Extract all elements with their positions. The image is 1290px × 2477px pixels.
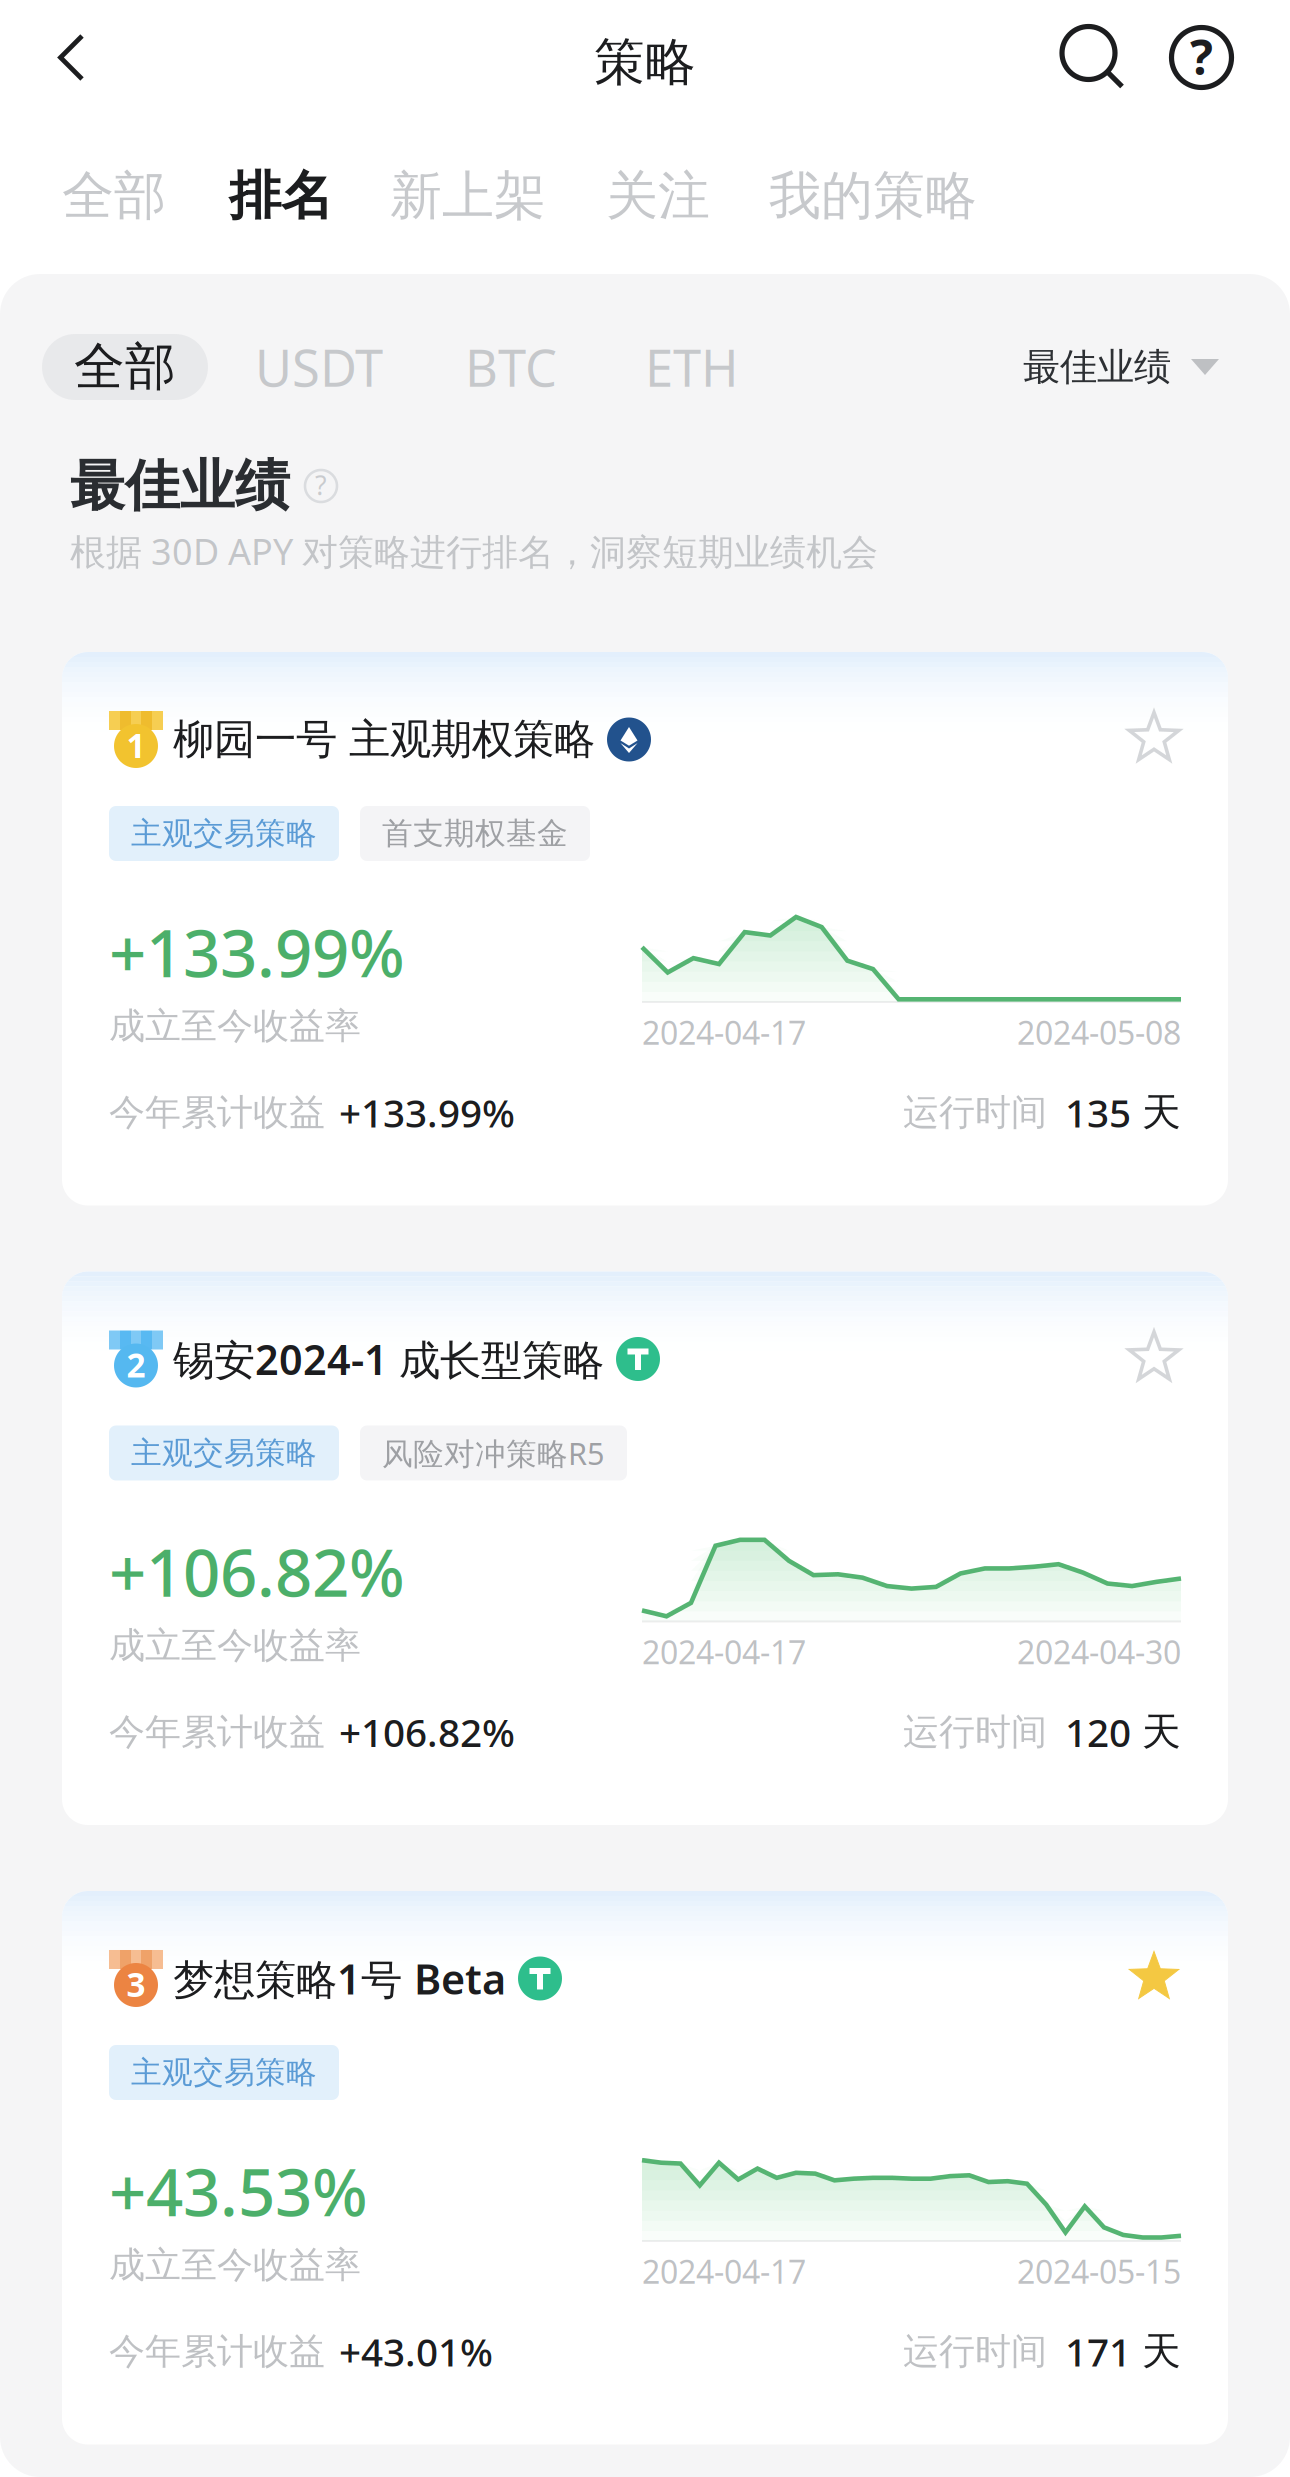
staticText: 全部 bbox=[74, 336, 176, 398]
staticText: 风险对冲策略R5 bbox=[382, 1433, 605, 1473]
staticText: 成立至今收益率 bbox=[109, 1004, 361, 1048]
staticText: 3 bbox=[126, 1962, 145, 2006]
button[interactable]: 全部 bbox=[62, 157, 166, 235]
staticText: 2024-04-30 bbox=[1017, 1630, 1181, 1673]
button[interactable]: 全部 bbox=[42, 334, 208, 400]
staticText: 2024-04-17 bbox=[642, 1011, 806, 1053]
staticText: 锡安2024-1 成长型策略 bbox=[173, 1332, 604, 1386]
staticText: 成立至今收益率 bbox=[109, 2243, 361, 2287]
staticText: +106.82% bbox=[339, 1706, 515, 1758]
button[interactable]: USDT bbox=[208, 334, 430, 400]
staticText: 关注 bbox=[606, 164, 710, 228]
staticText: 策略 bbox=[594, 31, 696, 94]
staticText: 2024-05-15 bbox=[1017, 2250, 1181, 2292]
staticText: 最佳业绩 bbox=[1023, 344, 1171, 390]
staticText: 柳园一号 主观期权策略 bbox=[173, 714, 595, 765]
staticText: USDT bbox=[255, 333, 383, 401]
button[interactable]: Help bbox=[1171, 9, 1232, 105]
staticText: 主观交易策略 bbox=[131, 1434, 317, 1472]
button[interactable]: Remove from favourites bbox=[1127, 1951, 1181, 2005]
staticText: +106.82% bbox=[109, 1528, 405, 1615]
staticText: 首支期权基金 bbox=[382, 815, 568, 852]
staticText: 今年累计收益 bbox=[109, 1710, 325, 1754]
staticText: ? bbox=[1190, 25, 1213, 88]
staticText: 今年累计收益 bbox=[109, 2329, 325, 2374]
staticText: 120 bbox=[1065, 1706, 1131, 1758]
staticText: 新上架 bbox=[390, 164, 546, 228]
staticText: 2024-05-08 bbox=[1017, 1011, 1181, 1053]
staticText: 运行时间 bbox=[903, 1710, 1047, 1754]
staticText: 天 bbox=[1142, 1708, 1181, 1756]
button[interactable]: Back bbox=[0, 9, 142, 105]
staticText: 排名 bbox=[229, 164, 333, 228]
button[interactable]: 最佳业绩 bbox=[1023, 334, 1219, 400]
button[interactable]: Add to favourites bbox=[1127, 1332, 1181, 1386]
staticText: 171 bbox=[1065, 2326, 1131, 2377]
staticText: 梦想策略1号 Beta bbox=[173, 1951, 506, 2006]
staticText: 主观交易策略 bbox=[131, 815, 317, 852]
button[interactable]: Search bbox=[1062, 9, 1124, 105]
staticText: 成立至今收益率 bbox=[109, 1623, 361, 1668]
staticText: +43.53% bbox=[109, 2148, 368, 2234]
staticText: 135 bbox=[1065, 1087, 1131, 1138]
staticText: 2 bbox=[126, 1342, 145, 1387]
button[interactable]: 关注 bbox=[606, 157, 710, 235]
staticText: 天 bbox=[1142, 2328, 1181, 2375]
button[interactable]: 我的策略 bbox=[769, 157, 977, 235]
staticText: BTC bbox=[465, 333, 557, 401]
staticText: +133.99% bbox=[339, 1087, 515, 1138]
staticText: 2024-04-17 bbox=[642, 2250, 806, 2292]
staticText: +133.99% bbox=[109, 909, 405, 995]
staticText: 1 bbox=[126, 723, 145, 767]
button[interactable]: 排名 bbox=[229, 157, 333, 235]
staticText: 天 bbox=[1142, 1089, 1181, 1136]
staticText: 运行时间 bbox=[903, 1090, 1047, 1135]
staticText: 我的策略 bbox=[769, 164, 977, 228]
staticText: +43.01% bbox=[339, 2326, 493, 2377]
button[interactable]: ETH bbox=[592, 334, 792, 400]
staticText: 运行时间 bbox=[903, 2329, 1047, 2374]
staticText: 今年累计收益 bbox=[109, 1090, 325, 1135]
button[interactable]: BTC bbox=[430, 334, 592, 400]
staticText: ETH bbox=[645, 333, 739, 401]
button[interactable]: 新上架 bbox=[390, 157, 546, 235]
staticText: 最佳业绩 bbox=[70, 452, 290, 519]
staticText: 全部 bbox=[62, 164, 166, 228]
staticText: 2024-04-17 bbox=[642, 1630, 806, 1673]
staticText: 根据 30D APY 对策略进行排名，洞察短期业绩机会 bbox=[70, 527, 878, 575]
staticText: ? bbox=[315, 467, 327, 503]
button[interactable]: Add to favourites bbox=[1127, 712, 1181, 766]
staticText: 主观交易策略 bbox=[131, 2054, 317, 2091]
